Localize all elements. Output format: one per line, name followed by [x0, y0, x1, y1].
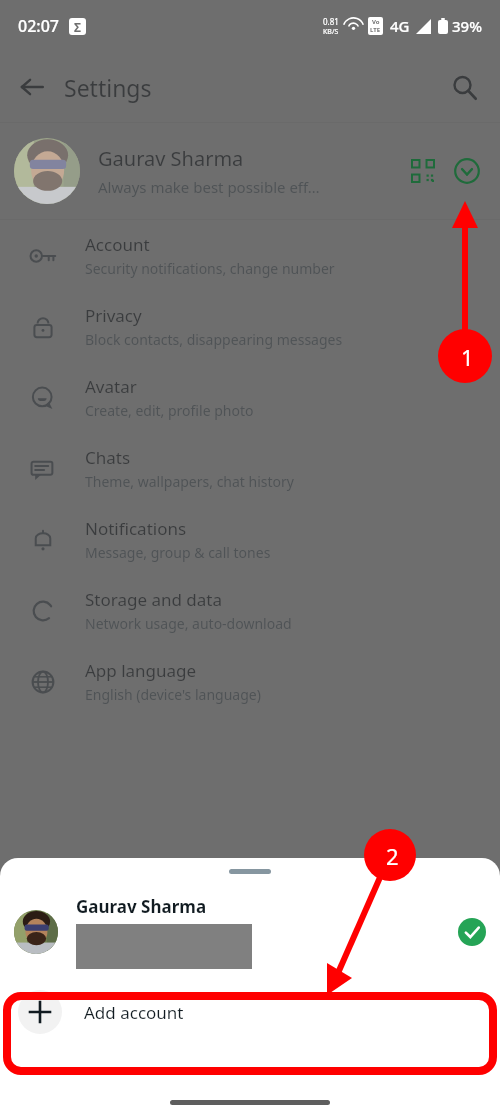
button[interactable]: Privacy: [0, 291, 500, 362]
staticText: Add account: [84, 1001, 184, 1024]
staticText: Chats: [85, 446, 131, 469]
staticText: Theme, wallpapers, chat history: [85, 472, 294, 491]
staticText: 4G: [390, 16, 410, 36]
button[interactable]: Back: [10, 65, 54, 109]
staticText: 1: [461, 342, 474, 366]
staticText: 2: [386, 841, 399, 865]
button[interactable]: Avatar: [0, 362, 500, 433]
button[interactable]: Chats: [0, 433, 500, 504]
staticText: Vo: [372, 18, 380, 26]
button[interactable]: Switch account: [448, 152, 486, 190]
staticText: 0.81: [323, 16, 339, 27]
staticText: KB/S: [323, 27, 339, 37]
staticText: Message, group & call tones: [85, 543, 271, 562]
staticText: LTE: [370, 26, 381, 34]
staticText: Security notifications, change number: [85, 259, 335, 278]
staticText: 02:07: [18, 15, 59, 37]
staticText: Network usage, auto-download: [85, 614, 292, 633]
button[interactable]: Gaurav Sharma: [0, 890, 500, 974]
button[interactable]: Notifications: [0, 504, 500, 575]
staticText: Notifications: [85, 517, 187, 540]
staticText: Gaurav Sharma: [98, 145, 244, 172]
button[interactable]: Account: [0, 220, 500, 291]
button[interactable]: App language: [0, 646, 500, 717]
staticText: Σ: [74, 19, 81, 35]
staticText: Account: [85, 233, 150, 256]
button[interactable]: QR code: [404, 152, 442, 190]
staticText: Gaurav Sharma: [76, 895, 207, 918]
button[interactable]: Gaurav Sharma: [0, 123, 500, 219]
staticText: Avatar: [85, 375, 137, 398]
staticText: Block contacts, disappearing messages: [85, 330, 343, 349]
button[interactable]: Storage and data: [0, 575, 500, 646]
staticText: Settings: [64, 72, 152, 103]
staticText: Privacy: [85, 304, 142, 327]
button[interactable]: Search: [442, 65, 486, 109]
staticText: Create, edit, profile photo: [85, 401, 254, 420]
staticText: Always make best possible eff…: [98, 177, 320, 197]
staticText: 39%: [452, 16, 482, 36]
staticText: English (device's language): [85, 685, 261, 704]
button[interactable]: Add account: [0, 974, 500, 1050]
staticText: App language: [85, 659, 197, 682]
staticText: Storage and data: [85, 588, 223, 611]
